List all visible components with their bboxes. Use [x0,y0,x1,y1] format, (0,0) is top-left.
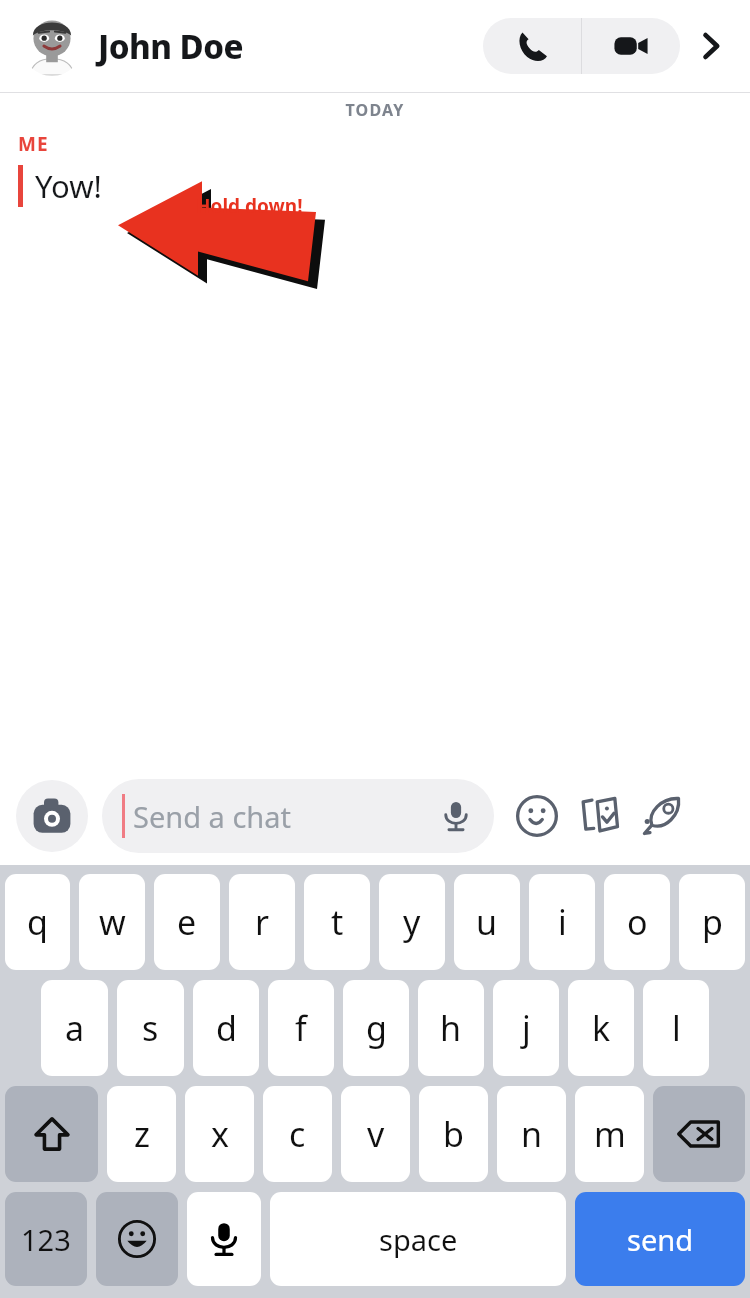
staticText: e [177,899,197,945]
button[interactable]: s [117,980,184,1076]
button[interactable]: Video call [582,18,680,74]
button[interactable]: l [643,980,709,1076]
button[interactable]: r [229,874,295,970]
button[interactable]: Send a chat [102,779,494,853]
staticText: v [367,1111,385,1157]
staticText: r [255,899,270,945]
staticText: Send a chat [133,797,291,836]
staticText: i [558,899,567,945]
button[interactable]: More [680,15,742,77]
staticText: n [521,1111,543,1157]
button[interactable]: z [107,1086,176,1182]
button[interactable]: Stickers [506,785,568,847]
button[interactable]: Backspace [653,1086,745,1182]
staticText: u [476,899,498,945]
button[interactable]: u [454,874,520,970]
button[interactable]: Snaps [568,785,630,847]
button[interactable]: a [41,980,108,1076]
staticText: d [216,1005,237,1051]
button[interactable]: e [154,874,220,970]
button[interactable]: i [529,874,595,970]
button[interactable]: Emoji [96,1192,178,1286]
button[interactable]: n [497,1086,566,1182]
button[interactable]: Voice input [187,1192,261,1286]
staticText: y [403,899,421,945]
button[interactable]: space [270,1192,566,1286]
staticText: w [99,899,126,945]
staticText: b [443,1111,464,1157]
button[interactable]: d [193,980,259,1076]
staticText: k [592,1005,611,1051]
button[interactable]: q [5,874,70,970]
staticText: Yow! [35,165,102,207]
staticText: TODAY [0,99,750,121]
button[interactable]: m [575,1086,644,1182]
staticText: 123 [21,1220,71,1259]
staticText: space [379,1220,458,1259]
staticText: o [627,899,648,945]
button[interactable]: f [268,980,334,1076]
button[interactable]: x [185,1086,254,1182]
staticText: z [134,1111,150,1157]
button[interactable]: Camera [16,780,88,852]
staticText: l [672,1005,681,1051]
button[interactable]: t [304,874,370,970]
button[interactable]: j [493,980,559,1076]
staticText: Hold down! [196,193,303,219]
button[interactable]: h [418,980,484,1076]
staticText: h [440,1005,462,1051]
staticText: t [331,899,344,945]
button[interactable]: send [575,1192,745,1286]
staticText: g [366,1005,387,1051]
button[interactable]: Shift [5,1086,98,1182]
staticText: p [702,899,723,945]
staticText: f [295,1005,307,1051]
button[interactable]: y [379,874,445,970]
staticText: ME [18,131,49,157]
staticText: m [594,1111,626,1157]
button[interactable]: g [343,980,409,1076]
button[interactable]: Games [630,785,692,847]
staticText: q [27,899,48,945]
staticText: s [142,1005,159,1051]
button[interactable]: p [679,874,745,970]
button[interactable]: 123 [5,1192,87,1286]
staticText: send [627,1220,694,1259]
button[interactable]: Voice note [428,788,484,844]
button[interactable]: k [568,980,634,1076]
staticText: a [65,1005,85,1051]
staticText: c [289,1111,306,1157]
staticText: j [522,1005,531,1051]
button[interactable]: b [419,1086,488,1182]
button[interactable]: Voice call [483,18,581,74]
button[interactable]: o [604,874,670,970]
staticText: x [211,1111,229,1157]
button[interactable]: w [79,874,145,970]
button[interactable]: c [263,1086,332,1182]
staticText: John Doe [98,24,244,69]
button[interactable]: v [341,1086,410,1182]
button[interactable]: Profile [22,16,82,76]
